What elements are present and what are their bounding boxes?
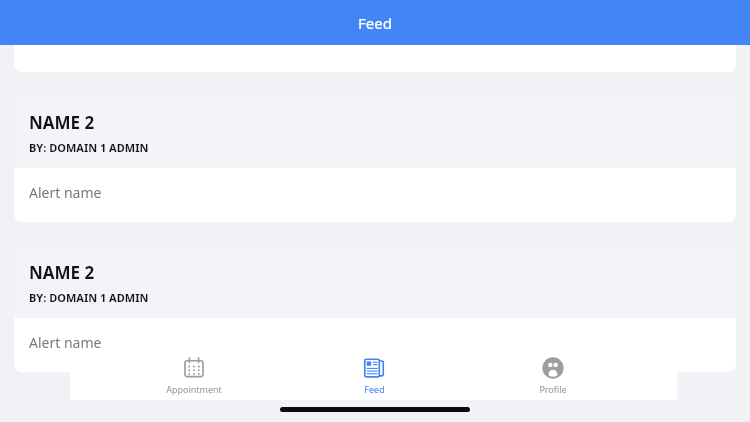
staticText: Alert name	[29, 333, 102, 352]
staticText: Feed	[358, 13, 392, 33]
button[interactable]: Appointment	[139, 352, 249, 400]
other: Appointment	[183, 357, 205, 379]
button[interactable]: NAME 2	[14, 97, 736, 222]
staticText: Feed	[364, 383, 385, 395]
button[interactable]: Profile	[498, 352, 608, 400]
staticText: Appointment	[166, 383, 222, 395]
staticText: Profile	[539, 383, 567, 395]
staticText: NAME 2	[29, 261, 95, 284]
other: Profile	[542, 357, 564, 379]
button[interactable]: NAME 2	[14, 247, 736, 372]
staticText: BY: DOMAIN 1 ADMIN	[29, 140, 149, 155]
button[interactable]: Feed	[319, 352, 429, 400]
staticText: NAME 2	[29, 111, 95, 134]
button[interactable]: Content	[14, 0, 736, 72]
staticText: Alert name	[29, 183, 102, 202]
other: Feed	[363, 357, 385, 379]
staticText: BY: DOMAIN 1 ADMIN	[29, 290, 149, 305]
